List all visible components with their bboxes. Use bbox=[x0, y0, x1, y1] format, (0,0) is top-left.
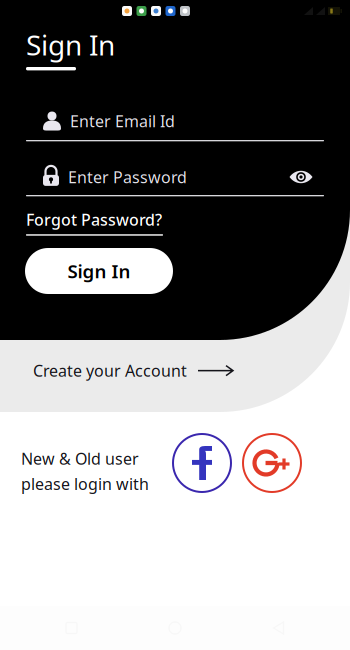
staticText: Enter Password bbox=[68, 166, 187, 188]
button[interactable]: Sign in with Google bbox=[241, 432, 303, 494]
staticText: Sign In bbox=[26, 26, 115, 63]
staticText: Forgot Password? bbox=[26, 209, 162, 230]
staticText: Sign In bbox=[67, 259, 130, 283]
staticText: Create your Account bbox=[33, 360, 187, 381]
staticText: New & Old user bbox=[21, 448, 139, 469]
button[interactable]: Create your Account bbox=[33, 360, 233, 381]
button[interactable]: Enter Password bbox=[26, 165, 324, 196]
staticText: please login with bbox=[21, 473, 149, 494]
button[interactable]: Sign in with Facebook bbox=[171, 432, 233, 494]
button[interactable]: Enter Email Id bbox=[26, 110, 324, 141]
button[interactable]: Sign In bbox=[25, 248, 173, 294]
staticText: Enter Email Id bbox=[70, 110, 175, 132]
button[interactable]: Forgot Password? bbox=[26, 209, 163, 236]
